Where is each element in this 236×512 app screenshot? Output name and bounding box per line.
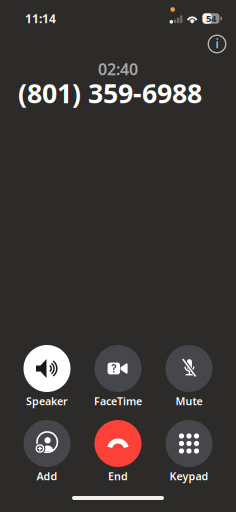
staticText: 02:40 <box>98 58 138 80</box>
staticText: Mute <box>175 394 202 408</box>
button[interactable]: Speaker <box>12 345 82 407</box>
staticText: i <box>215 36 218 52</box>
staticText: End <box>108 469 128 483</box>
staticText: 54 <box>206 12 216 25</box>
staticText: Speaker <box>26 394 68 408</box>
staticText: FaceTime <box>94 394 142 408</box>
button[interactable]: Call details <box>202 31 232 57</box>
staticText: 11:14 <box>25 10 56 26</box>
staticText: Add <box>36 469 57 483</box>
staticText: Keypad <box>169 469 208 483</box>
button[interactable]: FaceTime <box>83 345 153 407</box>
button[interactable]: Add <box>12 420 82 482</box>
staticText: (801) 359-6988 <box>18 75 202 111</box>
button[interactable]: Mute <box>154 345 224 407</box>
button[interactable]: End <box>83 420 153 482</box>
button[interactable]: Keypad <box>154 420 224 482</box>
